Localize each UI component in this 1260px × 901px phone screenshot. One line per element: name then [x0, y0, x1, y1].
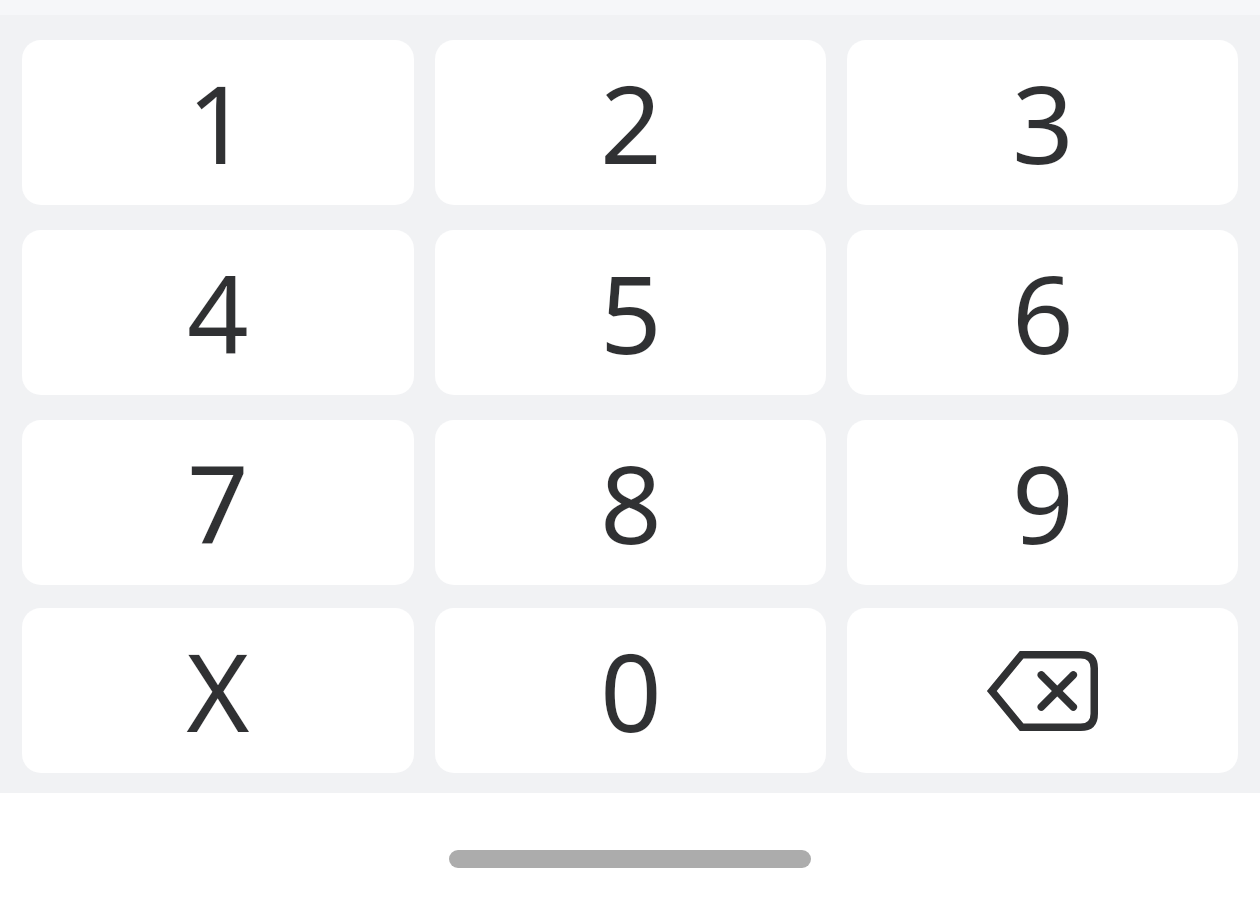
button[interactable]: 4: [22, 230, 414, 395]
staticText: 8: [600, 429, 662, 576]
button[interactable]: X: [22, 608, 414, 773]
button[interactable]: 7: [22, 420, 414, 585]
button[interactable]: 0: [435, 608, 826, 773]
button[interactable]: 9: [847, 420, 1238, 585]
staticText: X: [186, 617, 250, 764]
staticText: 3: [1012, 49, 1074, 196]
button[interactable]: 3: [847, 40, 1238, 205]
staticText: 4: [187, 239, 249, 386]
staticText: 9: [1012, 429, 1074, 576]
staticText: 1: [187, 49, 249, 196]
staticText: 7: [187, 429, 249, 576]
button[interactable]: 2: [435, 40, 826, 205]
button[interactable]: 8: [435, 420, 826, 585]
staticText: 6: [1012, 239, 1074, 386]
button[interactable]: 1: [22, 40, 414, 205]
staticText: 2: [600, 49, 662, 196]
button[interactable]: 5: [435, 230, 826, 395]
staticText: 0: [600, 617, 662, 764]
button[interactable]: 6: [847, 230, 1238, 395]
button[interactable]: Backspace: [847, 608, 1238, 773]
staticText: 5: [600, 239, 662, 386]
